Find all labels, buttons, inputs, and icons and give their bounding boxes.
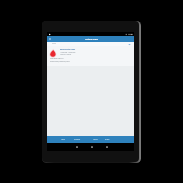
staticText: Profile	[105, 138, 110, 140]
button[interactable]: Home	[90, 145, 94, 149]
staticText: Alerts	[61, 138, 65, 140]
button[interactable]: Camps	[93, 136, 98, 141]
button[interactable]: Blood Donation Camp	[47, 46, 134, 66]
staticText: Search	[52, 43, 57, 45]
staticText: Lakeside Hospital, Westminster, London	[50, 61, 70, 62]
button[interactable]: Navigation menu	[47, 36, 53, 42]
staticText: Software Guide	[85, 38, 98, 40]
button[interactable]: Search	[47, 42, 134, 46]
staticText: Social Blood Drive Unit	[50, 58, 64, 60]
staticText: Camps	[93, 138, 98, 140]
staticText: Blood Donation Camp	[60, 49, 76, 51]
button[interactable]: Profile	[105, 136, 110, 141]
button[interactable]: Back	[75, 145, 79, 149]
staticText: Donation	[74, 138, 81, 140]
staticText: 11 Feb 2020 - 14 Feb 2020	[60, 52, 76, 54]
staticText: 10:00 AM - 4:00 PM	[60, 54, 72, 56]
button[interactable]: Donation	[74, 136, 81, 141]
button[interactable]: Alerts	[61, 136, 65, 141]
button[interactable]: Filter	[128, 43, 131, 46]
button[interactable]: Recent apps	[105, 145, 109, 149]
